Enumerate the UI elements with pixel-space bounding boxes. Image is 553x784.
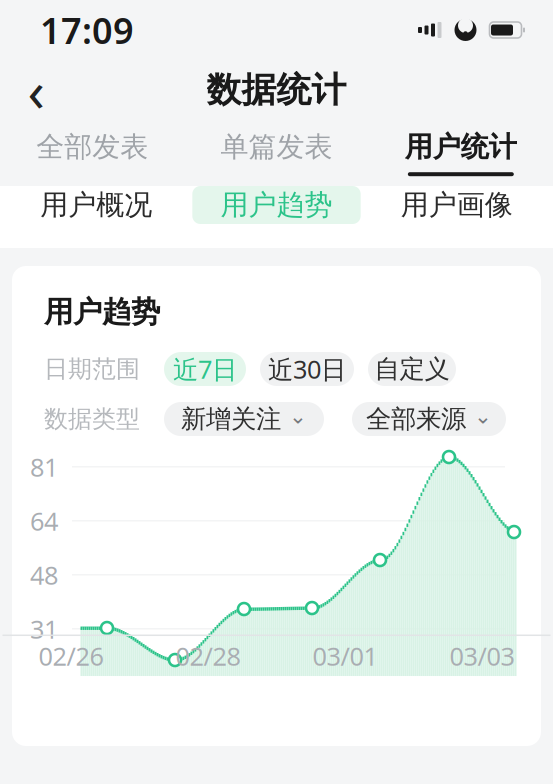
button[interactable]: 用户概况 xyxy=(12,186,180,224)
staticText: 数据统计 xyxy=(206,69,346,111)
staticText: 近7日 xyxy=(173,352,237,386)
button[interactable]: 近30日 xyxy=(260,352,354,386)
staticText: 单篇发表 xyxy=(220,130,332,164)
staticText: ⌄ xyxy=(474,404,492,428)
button[interactable]: 返回 xyxy=(8,64,64,116)
staticText: ‹ xyxy=(27,53,44,127)
button[interactable]: 全部来源 xyxy=(352,402,506,436)
staticText: 02/28 xyxy=(175,639,240,673)
button[interactable]: 自定义 xyxy=(368,352,456,386)
staticText: 17:09 xyxy=(40,6,134,54)
staticText: 数据类型 xyxy=(44,404,140,434)
staticText: 用户趋势 xyxy=(220,188,332,222)
staticText: 48 xyxy=(30,558,58,592)
staticText: 31 xyxy=(30,612,58,646)
staticText: 02/26 xyxy=(38,639,103,673)
button[interactable]: 近7日 xyxy=(164,352,246,386)
staticText: 全部来源 xyxy=(366,403,466,435)
button[interactable]: 新增关注 xyxy=(164,402,324,436)
button[interactable]: 全部发表 xyxy=(0,120,184,186)
staticText: ⌄ xyxy=(289,404,307,428)
button[interactable]: 用户统计 xyxy=(369,120,553,186)
button[interactable]: 单篇发表 xyxy=(184,120,369,186)
staticText: 64 xyxy=(30,504,58,538)
staticText: 新增关注 xyxy=(181,403,281,435)
staticText: 用户趋势 xyxy=(44,294,160,330)
staticText: 03/01 xyxy=(312,639,377,673)
staticText: 03/03 xyxy=(449,639,514,673)
staticText: 81 xyxy=(30,450,58,484)
staticText: 自定义 xyxy=(374,353,449,385)
staticText: 用户概况 xyxy=(40,188,152,222)
button[interactable]: 用户趋势 xyxy=(192,186,361,224)
staticText: 用户统计 xyxy=(405,130,517,164)
button[interactable]: 用户画像 xyxy=(373,186,541,224)
staticText: 用户画像 xyxy=(401,188,513,222)
staticText: 日期范围 xyxy=(44,354,140,384)
staticText: 近30日 xyxy=(268,352,346,386)
staticText: 全部发表 xyxy=(36,130,148,164)
